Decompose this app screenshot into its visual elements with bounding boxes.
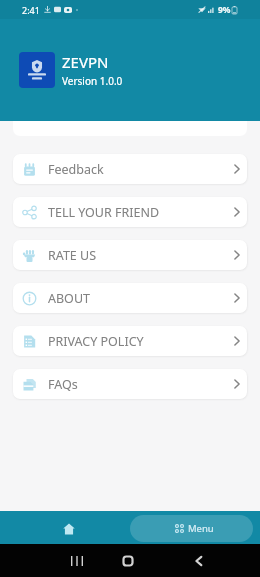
staticText: 2:41 bbox=[22, 4, 40, 16]
button[interactable]: Menu bbox=[130, 515, 253, 542]
button[interactable]: TELL YOUR FRIEND bbox=[13, 197, 247, 227]
button[interactable]: Home bbox=[0, 511, 130, 544]
button[interactable]: ABOUT bbox=[13, 283, 247, 313]
staticText: FAQs bbox=[48, 376, 78, 393]
staticText: Feedback bbox=[48, 161, 104, 178]
staticText: ABOUT bbox=[48, 290, 90, 307]
staticText: TELL YOUR FRIEND bbox=[48, 204, 160, 221]
staticText: ZEVPN bbox=[62, 52, 109, 72]
button[interactable]: Home bbox=[116, 555, 140, 567]
button[interactable]: Feedback bbox=[13, 154, 247, 184]
button[interactable]: Back bbox=[186, 554, 210, 568]
staticText: Version 1.0.0 bbox=[62, 74, 123, 88]
staticText: 9% bbox=[218, 4, 231, 16]
button[interactable]: RATE US bbox=[13, 240, 247, 270]
button[interactable]: Recent apps bbox=[65, 555, 89, 567]
button[interactable]: PRIVACY POLICY bbox=[13, 326, 247, 356]
button[interactable]: FAQs bbox=[13, 369, 247, 399]
staticText: RATE US bbox=[48, 247, 97, 264]
staticText: PRIVACY POLICY bbox=[48, 333, 144, 350]
staticText: Menu bbox=[188, 522, 214, 535]
